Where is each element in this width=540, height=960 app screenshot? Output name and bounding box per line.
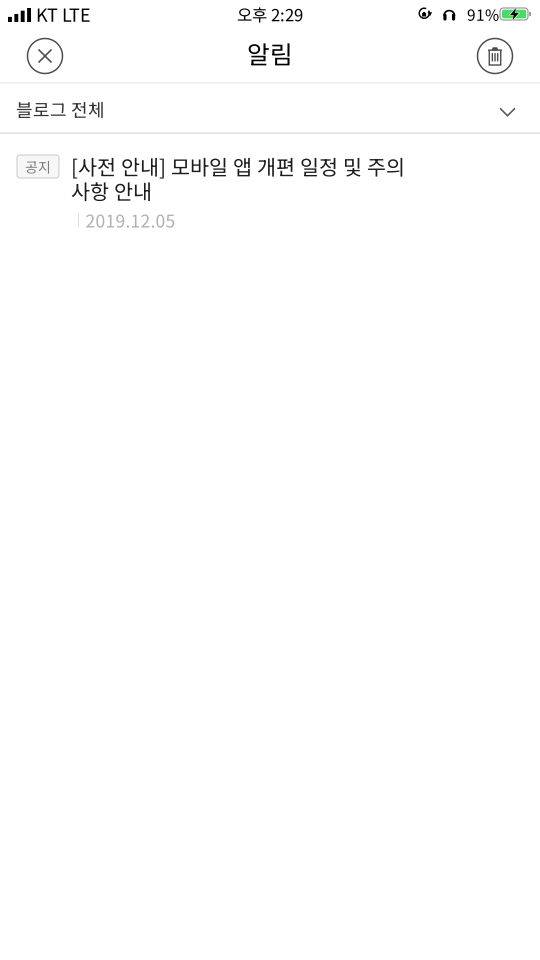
button[interactable]: 삭제 [468,28,522,84]
button[interactable]: 블로그 전체 [0,84,540,134]
staticText: 2019.12.05 [85,207,175,233]
button[interactable]: 공지 [0,134,540,247]
staticText: KT LTE [36,1,91,27]
staticText: 블로그 전체 [16,96,105,122]
staticText: [사전 안내] 모바일 앱 개편 일정 및 주의 사항 안내 [71,151,405,205]
button[interactable]: 닫기 [18,28,72,84]
staticText: 공지 [25,156,51,177]
staticText: 오후 2:29 [237,2,303,26]
staticText: 알림 [247,35,293,71]
staticText: 91% [467,3,499,25]
